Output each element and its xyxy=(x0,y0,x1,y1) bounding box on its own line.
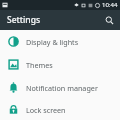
staticText: Lock screen xyxy=(26,105,66,115)
staticText: 10:44 xyxy=(102,1,118,9)
staticText: Settings xyxy=(7,14,41,26)
button[interactable]: Themes xyxy=(0,53,120,76)
button[interactable]: Notification manager xyxy=(0,76,120,99)
staticText: Themes xyxy=(26,60,53,70)
staticText: Display & lights xyxy=(26,37,79,47)
staticText: Notification manager xyxy=(26,83,98,93)
button[interactable]: Lock screen xyxy=(0,99,120,120)
button[interactable]: Search xyxy=(101,12,117,28)
button[interactable]: Display & lights xyxy=(0,30,120,53)
